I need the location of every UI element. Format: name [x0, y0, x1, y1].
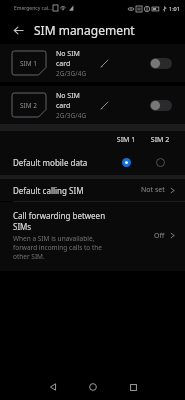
staticText: 2G/3G/4G: [56, 111, 87, 120]
staticText: card: [56, 59, 71, 69]
staticText: Call forwarding between: [13, 210, 106, 221]
button[interactable]: Default calling SIM: [0, 179, 185, 201]
staticText: card: [56, 101, 71, 111]
button[interactable]: Edit SIM name: [95, 54, 113, 72]
staticText: No SIM: [56, 91, 80, 101]
staticText: No SIM: [56, 49, 80, 59]
button[interactable]: Default mobile data SIM 1: [109, 150, 143, 174]
button[interactable]: SIM 1: [0, 44, 185, 82]
staticText: SIM 2: [143, 135, 177, 145]
staticText: 2G/3G/4G: [56, 69, 87, 78]
button[interactable]: Recents: [113, 374, 153, 400]
staticText: other SIM.: [13, 252, 45, 261]
button[interactable]: Toggle SIM 1: [147, 53, 175, 73]
staticText: Not set: [141, 185, 165, 195]
staticText: Off: [154, 231, 165, 241]
staticText: SIM 1: [109, 135, 143, 145]
staticText: Emergency cal...: [14, 5, 53, 12]
staticText: Default mobile data: [13, 157, 88, 168]
staticText: When a SIM is unavailable,: [13, 234, 95, 243]
button[interactable]: Home: [73, 374, 113, 400]
button[interactable]: Call forwarding between: [0, 202, 185, 271]
button[interactable]: Back: [33, 374, 73, 400]
staticText: SIM 2: [20, 101, 38, 110]
staticText: forward incoming calls to the: [13, 243, 102, 252]
staticText: SIM management: [34, 22, 135, 38]
button[interactable]: Default mobile data: [0, 149, 185, 175]
staticText: Default calling SIM: [13, 185, 84, 196]
staticText: 1:01: [169, 5, 180, 12]
button[interactable]: Default mobile data SIM 2: [143, 150, 177, 174]
button[interactable]: SIM 2: [0, 86, 185, 124]
button[interactable]: Edit SIM name: [95, 96, 113, 114]
staticText: SIMs: [13, 221, 32, 232]
button[interactable]: Back: [8, 20, 28, 40]
button[interactable]: Toggle SIM 2: [147, 95, 175, 115]
staticText: SIM 1: [20, 59, 38, 68]
